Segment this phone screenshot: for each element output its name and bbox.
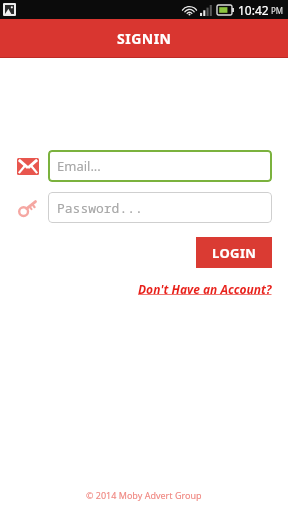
staticText: © 2014 Moby Advert Group (86, 489, 202, 501)
staticText: SIGNIN (117, 29, 172, 48)
staticText: Don't Have an Account? (138, 281, 272, 297)
staticText: LOGIN (212, 244, 257, 262)
other: Email (17, 158, 39, 175)
staticText: 10:42 (238, 2, 269, 18)
staticText: PM (271, 5, 284, 16)
staticText: Password... (57, 199, 143, 217)
button[interactable]: Don't Have an Account? (138, 281, 272, 297)
button[interactable]: LOGIN (196, 237, 272, 268)
button[interactable]: Email... (48, 150, 272, 182)
other: Password (17, 198, 39, 218)
staticText: Email... (57, 157, 101, 175)
button[interactable]: Password... (48, 192, 272, 223)
